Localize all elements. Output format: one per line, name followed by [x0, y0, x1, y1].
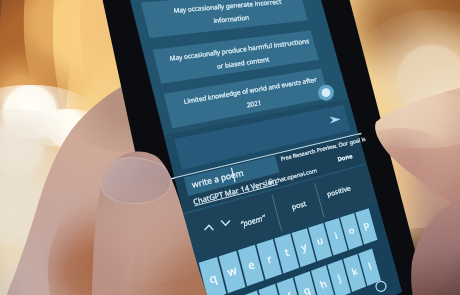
- button[interactable]: Hand holding a phone showing the ChatGPT…: [0, 0, 460, 295]
